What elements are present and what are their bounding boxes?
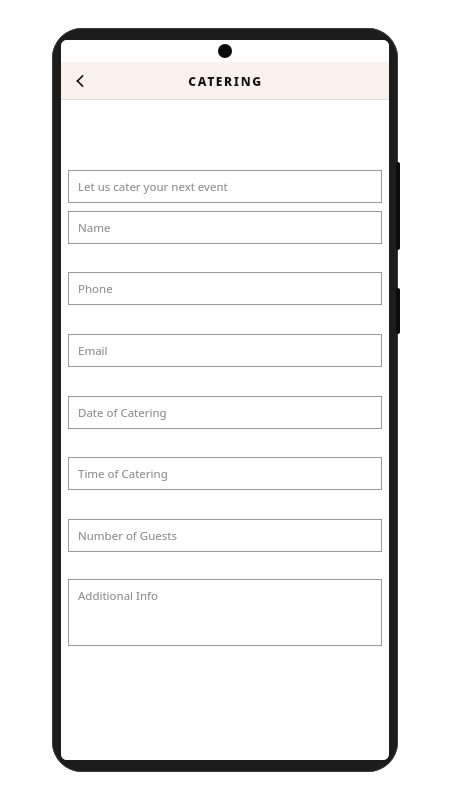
button[interactable]: Date of Catering bbox=[68, 396, 382, 429]
button[interactable]: Additional Info bbox=[68, 579, 382, 646]
button[interactable]: Phone bbox=[68, 272, 382, 305]
button[interactable]: Email bbox=[68, 334, 382, 367]
staticText: Time of Catering bbox=[78, 466, 168, 482]
staticText: Name bbox=[78, 220, 111, 236]
staticText: CATERING bbox=[188, 73, 263, 89]
staticText: Let us cater your next event bbox=[78, 179, 228, 195]
button[interactable]: Time of Catering bbox=[68, 457, 382, 490]
staticText: Number of Guests bbox=[78, 528, 177, 544]
button[interactable]: Number of Guests bbox=[68, 519, 382, 552]
button[interactable]: Name bbox=[68, 211, 382, 244]
staticText: Phone bbox=[78, 281, 113, 297]
staticText: Additional Info bbox=[78, 588, 158, 604]
staticText: Email bbox=[78, 343, 108, 359]
staticText: Date of Catering bbox=[78, 405, 167, 421]
button[interactable]: Back bbox=[61, 62, 99, 100]
button[interactable]: Let us cater your next event bbox=[68, 170, 382, 203]
